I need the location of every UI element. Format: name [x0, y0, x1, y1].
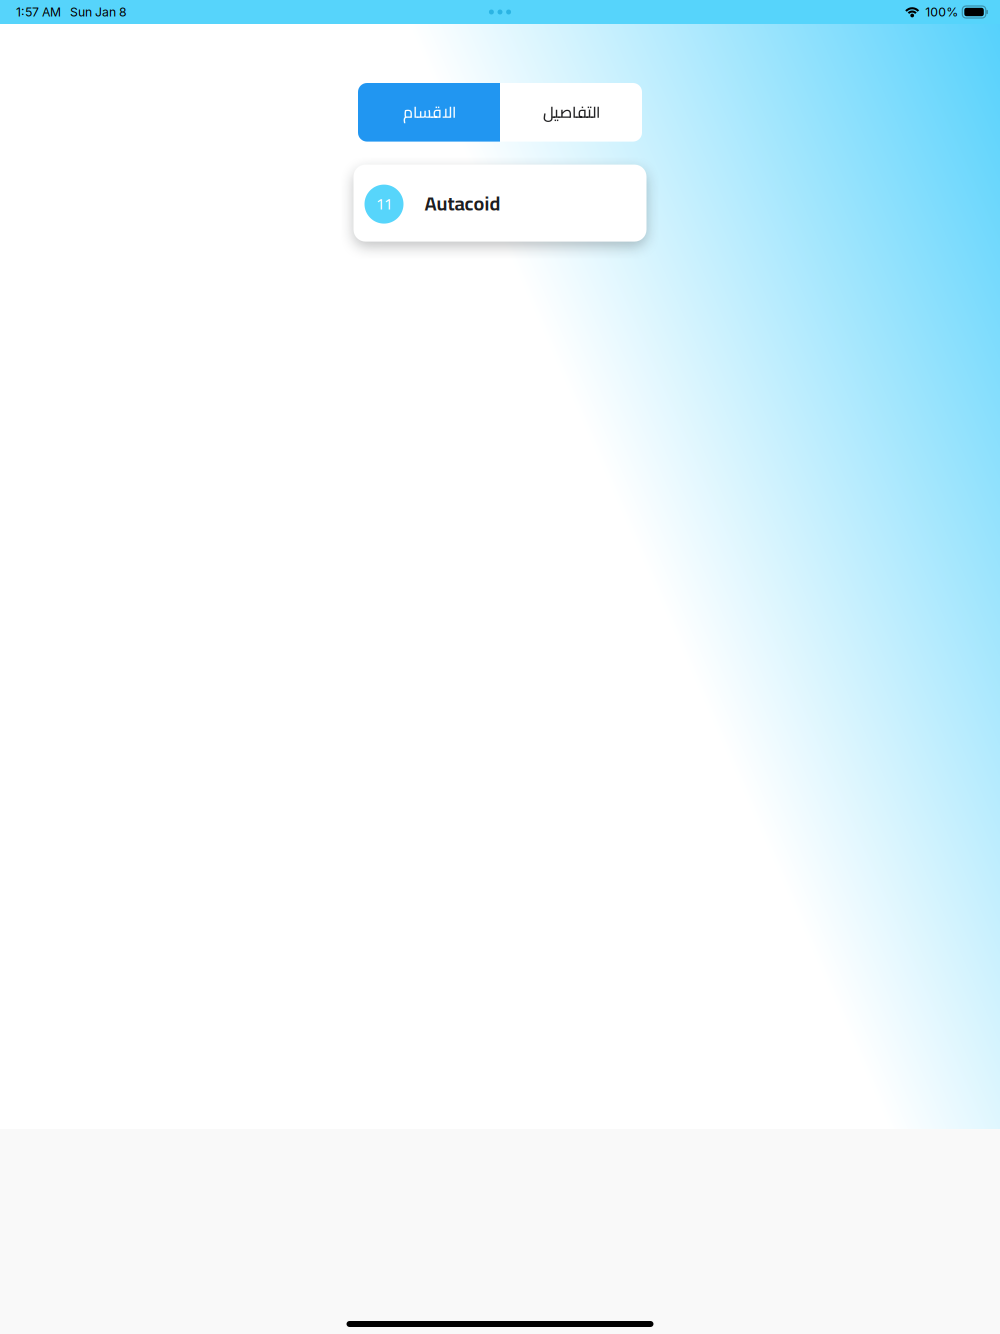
staticText: التفاصيل	[542, 97, 599, 127]
staticText: Sun Jan 8	[70, 5, 127, 19]
staticText: الاقسام	[402, 97, 455, 127]
button[interactable]: 11	[353, 165, 646, 242]
button[interactable]: التفاصيل	[500, 83, 642, 142]
button[interactable]: الاقسام	[358, 83, 500, 142]
staticText: 11	[376, 190, 392, 218]
staticText: 100%	[925, 5, 958, 19]
staticText: 1:57 AM	[16, 5, 61, 19]
staticText: Autacoid	[424, 184, 500, 222]
